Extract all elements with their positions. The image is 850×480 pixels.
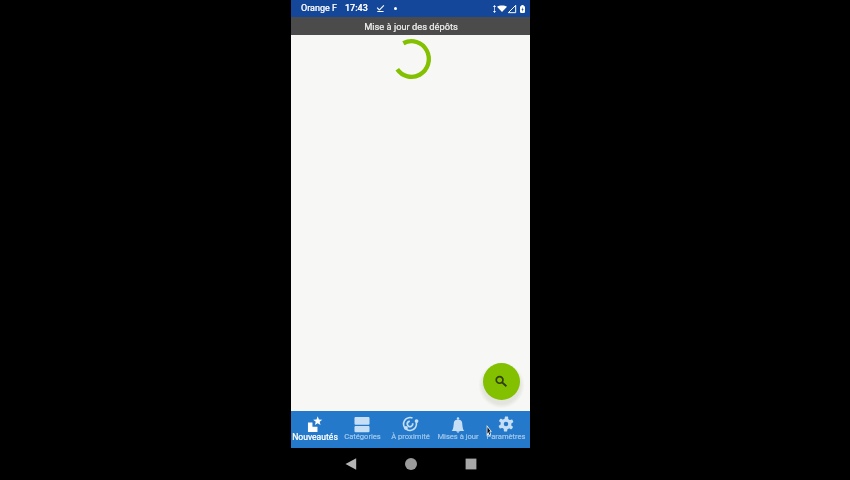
button[interactable]: Catégories xyxy=(338,411,386,448)
staticText: Mises à jour xyxy=(437,432,479,441)
staticText: Catégories xyxy=(344,432,381,441)
staticText: Paramètres xyxy=(486,432,526,441)
staticText: Orange F xyxy=(301,3,337,14)
button[interactable]: À proximité xyxy=(386,411,434,448)
staticText: Mise à jour des dépôts xyxy=(364,21,458,32)
button[interactable]: Paramètres xyxy=(482,411,530,448)
button[interactable]: Nouveautés xyxy=(291,411,338,448)
button[interactable]: Back xyxy=(331,448,371,480)
button[interactable]: Search xyxy=(483,363,520,400)
button[interactable]: Recent apps xyxy=(451,448,491,480)
staticText: 17:43 xyxy=(345,3,368,14)
button[interactable]: Home xyxy=(391,448,431,480)
staticText: Nouveautés xyxy=(292,432,338,442)
button[interactable]: Mises à jour xyxy=(434,411,482,448)
staticText: À proximité xyxy=(391,432,430,441)
